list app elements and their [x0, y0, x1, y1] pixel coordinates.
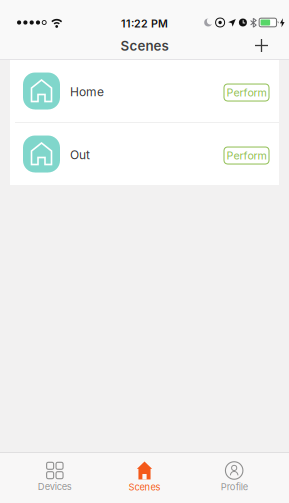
staticText: Perform [226, 149, 266, 162]
button[interactable]: Out [10, 123, 279, 185]
staticText: 11:22 PM [121, 17, 168, 30]
button[interactable]: Home [10, 60, 279, 122]
staticText: Perform [226, 86, 266, 99]
button[interactable]: Perform [224, 147, 269, 164]
button[interactable]: Devices [10, 453, 100, 503]
button[interactable]: Perform [224, 84, 269, 101]
button[interactable]: Add Scene [247, 31, 276, 60]
staticText: Scenes [120, 38, 168, 54]
staticText: Devices [38, 481, 72, 492]
staticText: Out [70, 148, 90, 162]
button[interactable]: Profile [189, 453, 279, 503]
staticText: Profile [221, 481, 248, 492]
staticText: Scenes [128, 481, 160, 492]
button[interactable]: Scenes [100, 453, 189, 503]
staticText: Home [70, 85, 104, 99]
